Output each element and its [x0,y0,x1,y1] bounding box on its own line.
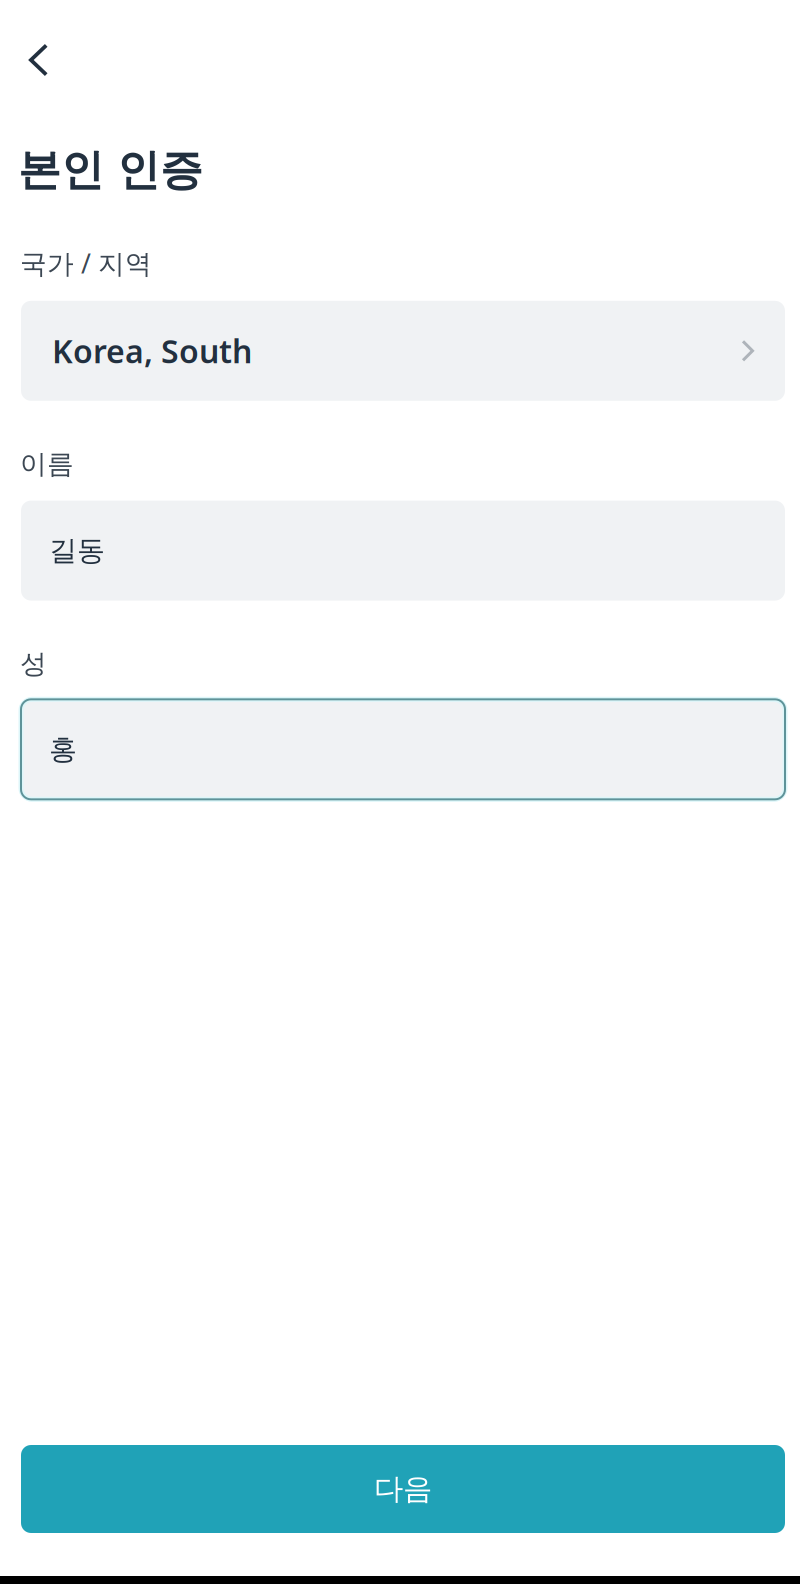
staticText: 홍 [49,732,77,766]
staticText: Korea, South [52,330,252,372]
staticText: 본인 인증 [18,144,203,196]
staticText: 이름 [20,448,74,481]
button[interactable]: 홍 [21,699,785,799]
button[interactable]: 길동 [21,501,785,601]
staticText: 국가 / 지역 [20,245,152,281]
button[interactable]: 다음 [21,1445,785,1533]
button[interactable]: Back [10,32,66,88]
staticText: 다음 [374,1471,432,1507]
button[interactable]: Korea, South [21,301,785,401]
staticText: 길동 [49,533,105,568]
staticText: 성 [20,648,47,680]
